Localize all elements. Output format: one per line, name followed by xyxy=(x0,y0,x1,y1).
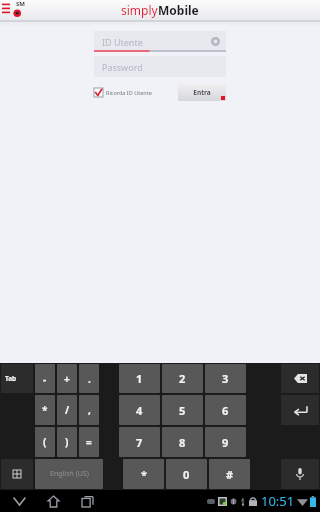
button[interactable]: # xyxy=(209,459,250,489)
staticText: # xyxy=(226,467,234,482)
staticText: 3 xyxy=(222,371,229,386)
staticText: 0 xyxy=(183,467,190,482)
staticText: Mobile xyxy=(158,2,199,18)
staticText: Tab xyxy=(5,374,17,383)
button[interactable]: Password xyxy=(94,56,226,77)
staticText: + xyxy=(64,372,70,386)
button[interactable]: / xyxy=(57,395,77,425)
button[interactable]: ( xyxy=(35,427,55,457)
button[interactable]: * xyxy=(35,395,55,425)
staticText: = xyxy=(86,435,92,449)
button[interactable]: 2 xyxy=(162,364,203,393)
staticText: 5 xyxy=(179,403,186,418)
button[interactable]: 6 xyxy=(205,395,246,425)
staticText: 8 xyxy=(179,435,186,450)
button[interactable]: Voice input xyxy=(281,459,319,489)
staticText: 6 xyxy=(222,403,229,418)
button[interactable]: . xyxy=(79,364,99,393)
staticText: ID Utente xyxy=(102,36,143,48)
staticText: Ricorda ID Utente xyxy=(106,89,152,96)
button[interactable]: 7 xyxy=(119,427,160,457)
button[interactable]: Hide keyboard xyxy=(6,490,32,512)
button[interactable]: Recent apps xyxy=(74,490,100,512)
staticText: 10:51 xyxy=(261,492,295,510)
staticText: * xyxy=(141,467,147,482)
staticText: . xyxy=(88,372,91,386)
button[interactable]: Enter xyxy=(281,395,319,425)
button[interactable]: * xyxy=(123,459,164,489)
staticText: * xyxy=(42,403,48,417)
button[interactable]: = xyxy=(79,427,99,457)
staticText: English (US) xyxy=(50,469,89,479)
staticText: 1 xyxy=(136,371,143,386)
button[interactable]: 1 xyxy=(119,364,160,393)
staticText: 2 xyxy=(179,371,186,386)
button[interactable]: + xyxy=(57,364,77,393)
staticText: 9 xyxy=(222,435,229,450)
button[interactable]: 8 xyxy=(162,427,203,457)
button[interactable]: 9 xyxy=(205,427,246,457)
staticText: , xyxy=(88,403,91,417)
button[interactable]: 0 xyxy=(166,459,207,489)
button[interactable]: Ricorda ID Utente xyxy=(94,88,152,97)
staticText: - xyxy=(43,372,47,386)
staticText: Entra xyxy=(193,88,211,97)
button[interactable]: ID Utente xyxy=(94,31,226,52)
button[interactable]: , xyxy=(79,395,99,425)
button[interactable]: Tab xyxy=(1,364,33,393)
button[interactable]: 3 xyxy=(205,364,246,393)
button[interactable]: ) xyxy=(57,427,77,457)
staticText: ) xyxy=(65,435,69,449)
staticText: simply xyxy=(121,2,158,18)
button[interactable]: 4 xyxy=(119,395,160,425)
staticText: ( xyxy=(43,435,47,449)
staticText: Password xyxy=(102,61,143,73)
button[interactable]: English (US) xyxy=(35,459,103,489)
button[interactable]: Delete xyxy=(281,364,319,393)
button[interactable]: Change keyboard xyxy=(1,459,33,489)
button[interactable]: - xyxy=(35,364,55,393)
button[interactable]: Home xyxy=(40,490,66,512)
button[interactable]: 5 xyxy=(162,395,203,425)
staticText: 7 xyxy=(136,435,143,450)
button[interactable]: Clear xyxy=(210,36,221,47)
button[interactable]: Entra xyxy=(178,84,226,101)
staticText: SM xyxy=(16,0,25,8)
staticText: / xyxy=(65,403,70,417)
button[interactable]: Menu xyxy=(1,0,29,20)
staticText: 4 xyxy=(136,403,143,418)
